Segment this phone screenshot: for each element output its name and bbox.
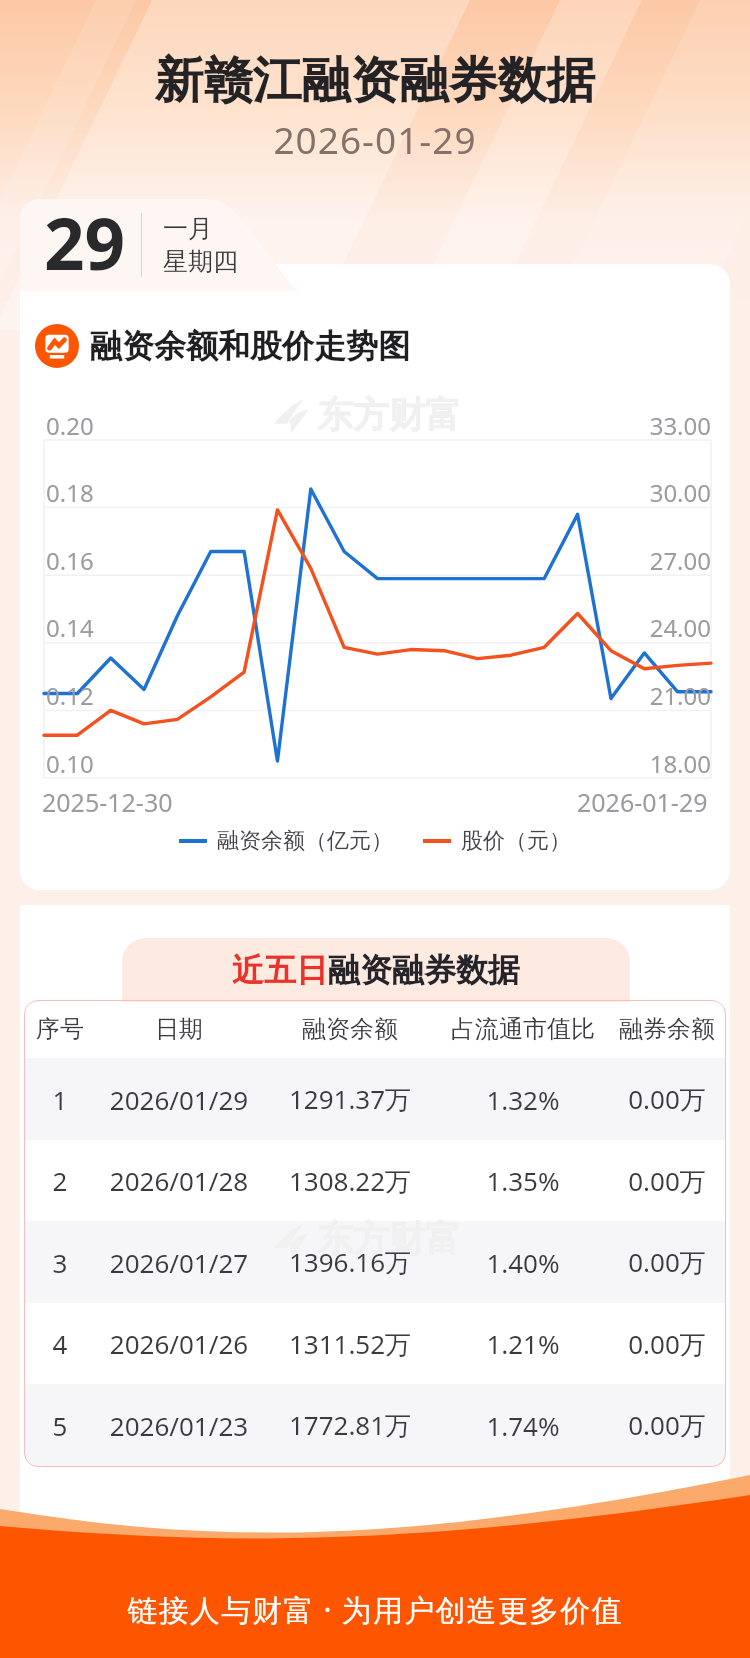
staticText: 24.00 bbox=[20, 611, 711, 644]
staticText: 2026/01/26 bbox=[96, 1326, 262, 1361]
staticText: 序号 bbox=[24, 1014, 96, 1044]
staticText: 5 bbox=[24, 1408, 96, 1443]
staticText: 2026-01-29 bbox=[577, 785, 708, 819]
staticText: 新赣江融资融券数据 bbox=[0, 50, 750, 112]
staticText: 0.12 bbox=[46, 679, 94, 712]
button[interactable]: 2 bbox=[24, 1140, 726, 1221]
staticText: 1308.22万 bbox=[262, 1163, 438, 1199]
staticText: 融券余额 bbox=[608, 1014, 726, 1044]
staticText: 0.00万 bbox=[608, 1163, 726, 1199]
staticText: 2026-01-29 bbox=[0, 114, 750, 164]
staticText: 33.00 bbox=[20, 409, 711, 442]
staticText: 0.14 bbox=[46, 611, 94, 644]
staticText: 0.20 bbox=[46, 409, 94, 442]
staticText: 0.16 bbox=[46, 544, 94, 577]
staticText: 0.00万 bbox=[608, 1081, 726, 1117]
staticText: 星期四 bbox=[163, 246, 238, 277]
staticText: 1 bbox=[24, 1082, 96, 1117]
staticText: 2 bbox=[24, 1163, 96, 1198]
staticText: 0.10 bbox=[46, 747, 94, 780]
staticText: 0.00万 bbox=[608, 1244, 726, 1280]
button[interactable]: 4 bbox=[24, 1303, 726, 1384]
staticText: 0.00万 bbox=[608, 1407, 726, 1443]
staticText: 融资余额（亿元） bbox=[217, 827, 393, 855]
staticText: 东方财富 bbox=[317, 392, 461, 437]
staticText: 2025-12-30 bbox=[42, 785, 173, 819]
staticText: 融资余额 bbox=[262, 1014, 438, 1044]
staticText: 日期 bbox=[96, 1014, 262, 1044]
staticText: 1.40% bbox=[438, 1245, 608, 1280]
button[interactable]: 3 bbox=[24, 1221, 726, 1303]
staticText: 融资余额和股价走势图 bbox=[90, 326, 410, 366]
staticText: 占流通市值比 bbox=[438, 1014, 608, 1044]
staticText: 29 bbox=[44, 194, 126, 286]
staticText: 21.00 bbox=[20, 679, 711, 712]
staticText: 1396.16万 bbox=[262, 1244, 438, 1280]
staticText: 4 bbox=[24, 1326, 96, 1361]
staticText: 27.00 bbox=[20, 544, 711, 577]
staticText: 1.21% bbox=[438, 1326, 608, 1361]
staticText: 2026/01/23 bbox=[96, 1408, 262, 1443]
staticText: 1.74% bbox=[438, 1408, 608, 1443]
staticText: 2026/01/28 bbox=[96, 1163, 262, 1198]
staticText: 18.00 bbox=[20, 747, 711, 780]
staticText: 股价（元） bbox=[461, 827, 571, 855]
staticText: 2026/01/27 bbox=[96, 1245, 262, 1280]
staticText: 一月 bbox=[163, 213, 213, 244]
staticText: 0.18 bbox=[46, 476, 94, 509]
staticText: 1.32% bbox=[438, 1082, 608, 1117]
staticText: 2026/01/29 bbox=[96, 1082, 262, 1117]
staticText: 东方财富 bbox=[317, 1216, 461, 1261]
button[interactable]: 5 bbox=[24, 1384, 726, 1466]
staticText: 1.35% bbox=[438, 1163, 608, 1198]
button[interactable]: 序号 bbox=[24, 1000, 726, 1058]
staticText: 近五日融资融券数据 bbox=[232, 950, 520, 990]
staticText: 1311.52万 bbox=[262, 1326, 438, 1362]
staticText: 1291.37万 bbox=[262, 1081, 438, 1117]
staticText: 1772.81万 bbox=[262, 1407, 438, 1443]
staticText: 链接人与财富 · 为用户创造更多价值 bbox=[0, 1589, 750, 1630]
staticText: 3 bbox=[24, 1245, 96, 1280]
staticText: 30.00 bbox=[20, 476, 711, 509]
button[interactable]: 1 bbox=[24, 1058, 726, 1140]
staticText: 0.00万 bbox=[608, 1326, 726, 1362]
